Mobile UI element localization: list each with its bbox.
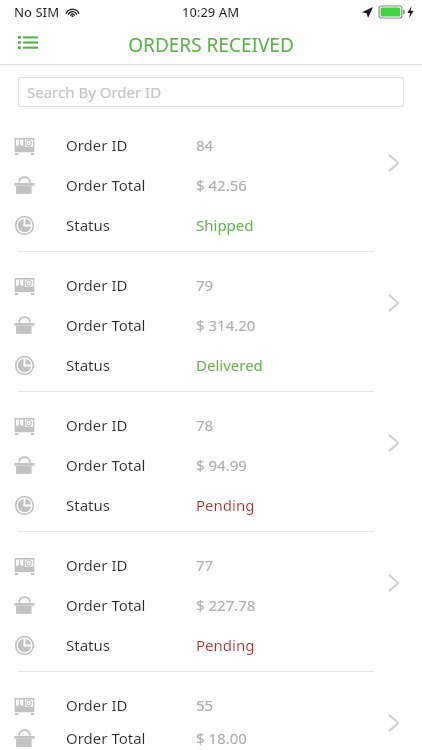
- staticText: Status: [66, 215, 196, 235]
- staticText: Order Total: [66, 455, 196, 475]
- staticText: Order Total: [66, 728, 196, 748]
- staticText: 10:29 AM: [182, 3, 240, 21]
- staticText: Status: [66, 355, 196, 375]
- staticText: 84: [196, 135, 214, 155]
- button[interactable]: Order ID: [0, 265, 422, 405]
- staticText: Delivered: [196, 355, 263, 375]
- staticText: Order ID: [66, 695, 196, 715]
- staticText: Order ID: [66, 135, 196, 155]
- staticText: Pending: [196, 495, 255, 515]
- staticText: Order Total: [66, 595, 196, 615]
- staticText: $ 42.56: [196, 175, 247, 195]
- staticText: 78: [196, 415, 214, 435]
- button[interactable]: Order ID: [0, 685, 422, 750]
- staticText: Order Total: [66, 315, 196, 335]
- staticText: $ 314.20: [196, 315, 256, 335]
- staticText: $ 227.78: [196, 595, 256, 615]
- staticText: 77: [196, 555, 214, 575]
- staticText: Order ID: [66, 555, 196, 575]
- staticText: Shipped: [196, 215, 254, 235]
- staticText: 55: [196, 695, 214, 715]
- staticText: Order ID: [66, 275, 196, 295]
- button[interactable]: Order ID: [0, 405, 422, 545]
- staticText: Order ID: [66, 415, 196, 435]
- button[interactable]: Menu: [8, 24, 48, 64]
- staticText: Order Total: [66, 175, 196, 195]
- staticText: ORDERS RECEIVED: [128, 32, 294, 58]
- staticText: Status: [66, 495, 196, 515]
- staticText: Pending: [196, 635, 255, 655]
- button[interactable]: Order ID: [0, 545, 422, 685]
- staticText: Search By Order ID: [27, 82, 162, 102]
- staticText: $ 94.99: [196, 455, 247, 475]
- staticText: 79: [196, 275, 214, 295]
- button[interactable]: Search By Order ID: [18, 77, 404, 107]
- staticText: No SIM: [14, 3, 60, 21]
- staticText: $ 18.00: [196, 728, 247, 748]
- button[interactable]: Order ID: [0, 125, 422, 265]
- staticText: Status: [66, 635, 196, 655]
